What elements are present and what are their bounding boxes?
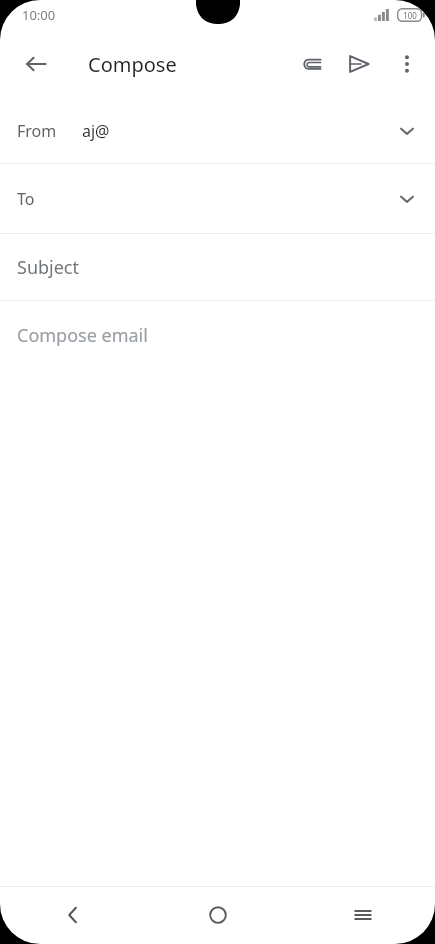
- button[interactable]: Compose email: [0, 301, 435, 886]
- button[interactable]: Send: [335, 40, 383, 88]
- staticText: To: [17, 188, 35, 210]
- button[interactable]: Home: [145, 886, 290, 944]
- button[interactable]: From: [0, 98, 435, 163]
- staticText: Compose email: [17, 323, 148, 348]
- staticText: 10:00: [22, 6, 56, 24]
- button[interactable]: Back: [12, 40, 60, 88]
- button[interactable]: To: [0, 164, 435, 233]
- staticText: Subject: [17, 255, 80, 280]
- staticText: From: [17, 120, 57, 142]
- button[interactable]: Subject: [0, 234, 435, 300]
- button[interactable]: Attach file: [287, 40, 335, 88]
- staticText: Compose: [88, 51, 177, 78]
- button[interactable]: Recent apps: [290, 886, 435, 944]
- staticText: 100: [403, 10, 417, 21]
- staticText: aj@: [82, 120, 110, 142]
- button[interactable]: More options: [383, 40, 431, 88]
- button[interactable]: Back: [0, 886, 145, 944]
